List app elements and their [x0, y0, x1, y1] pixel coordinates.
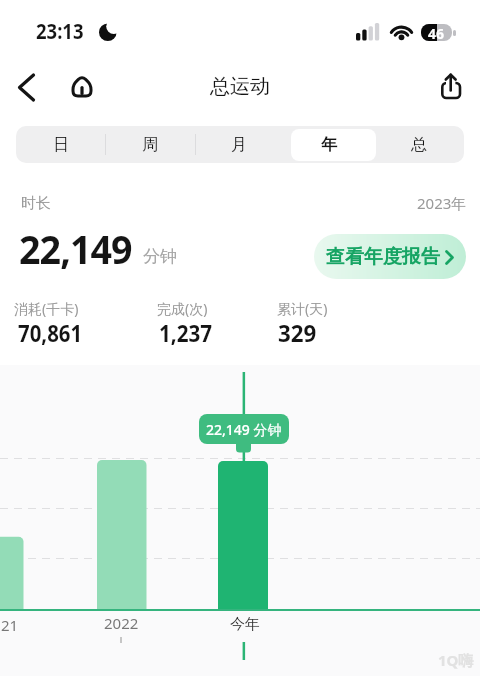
button[interactable]: 日: [16, 126, 105, 163]
button[interactable]: [71, 74, 93, 98]
staticText: 329: [278, 316, 317, 349]
button[interactable]: 年: [284, 126, 374, 163]
staticText: 1Q嗨: [438, 650, 474, 670]
staticText: 年: [321, 135, 337, 155]
staticText: 今年: [230, 615, 260, 634]
staticText: 月: [231, 135, 247, 155]
staticText: 日: [53, 135, 69, 155]
staticText: 22,149 分钟: [206, 420, 282, 439]
staticText: 完成(次): [157, 299, 208, 318]
staticText: 46: [428, 24, 445, 41]
staticText: 23:13: [36, 17, 83, 46]
staticText: 总: [411, 135, 427, 155]
staticText: 时长: [21, 194, 51, 213]
staticText: 消耗(千卡): [14, 299, 79, 318]
staticText: 22,149: [19, 221, 132, 275]
button[interactable]: [18, 74, 35, 101]
staticText: 21: [1, 615, 19, 635]
staticText: 总运动: [210, 74, 270, 99]
button[interactable]: 周: [105, 126, 194, 163]
staticText: 2023年: [417, 193, 467, 213]
staticText: 1,237: [159, 316, 212, 349]
staticText: 查看年度报告: [326, 245, 440, 269]
staticText: 分钟: [143, 246, 177, 267]
button[interactable]: 月: [194, 126, 284, 163]
staticText: 累计(天): [277, 299, 328, 318]
staticText: 2022: [104, 613, 139, 633]
staticText: 70,861: [18, 316, 83, 349]
button[interactable]: 22,149 分钟: [199, 414, 289, 444]
button[interactable]: 查看年度报告: [314, 234, 466, 279]
staticText: 周: [142, 135, 158, 155]
button[interactable]: 总: [374, 126, 464, 163]
button[interactable]: [441, 70, 461, 99]
